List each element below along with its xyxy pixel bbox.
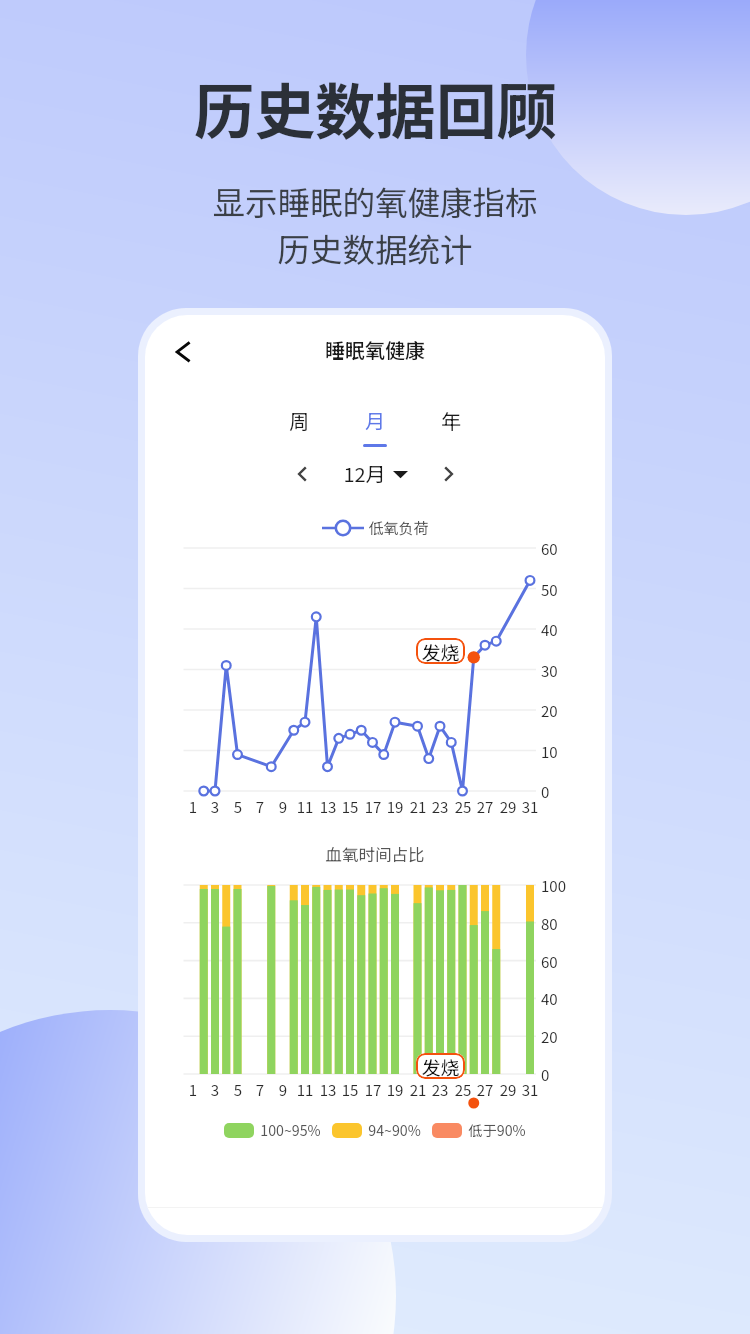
staticText: 29 (492, 1079, 524, 1101)
staticText: 年 (441, 406, 461, 435)
button[interactable]: Previous month (289, 460, 317, 488)
staticText: 12月 (343, 459, 386, 488)
staticText: 19 (379, 796, 411, 818)
staticText: 23 (424, 1079, 456, 1101)
staticText: 睡眠氧健康 (145, 335, 605, 364)
staticText: 3 (199, 796, 231, 818)
staticText: 23 (424, 796, 456, 818)
staticText: 17 (357, 796, 389, 818)
staticText: 历史数据统计 (277, 224, 473, 271)
staticText: 27 (469, 1079, 501, 1101)
staticText: 21 (402, 1079, 434, 1101)
staticText: 历史数据回顾 (194, 64, 557, 152)
staticText: 15 (334, 796, 366, 818)
staticText: 80 (541, 913, 581, 935)
staticText: 血氧时间占比 (145, 842, 605, 866)
staticText: 发烧 (421, 1053, 460, 1079)
staticText: 20 (541, 1026, 581, 1048)
staticText: 11 (289, 796, 321, 818)
staticText: 100~95% (260, 1120, 321, 1141)
staticText: 17 (357, 1079, 389, 1101)
staticText: 9 (267, 1079, 299, 1101)
button[interactable]: Next month (434, 460, 462, 488)
staticText: 13 (312, 1079, 344, 1101)
staticText: 29 (492, 796, 524, 818)
staticText: 周 (289, 406, 309, 435)
staticText: 低于90% (468, 1120, 526, 1141)
button[interactable]: 94~90% (332, 1120, 421, 1141)
button[interactable]: 年 (423, 406, 479, 447)
staticText: 15 (334, 1079, 366, 1101)
staticText: 94~90% (368, 1120, 421, 1141)
button[interactable]: 周 (271, 406, 327, 447)
staticText: 9 (267, 796, 299, 818)
button[interactable]: Back (170, 339, 198, 367)
staticText: 低氧负荷 (368, 517, 429, 539)
staticText: 100 (541, 875, 581, 897)
staticText: 60 (541, 538, 575, 560)
staticText: 13 (312, 796, 344, 818)
staticText: 40 (541, 988, 581, 1010)
staticText: 10 (541, 741, 575, 763)
staticText: 1 (177, 796, 209, 818)
staticText: 7 (244, 796, 276, 818)
button[interactable]: 12月 (343, 459, 408, 488)
staticText: 5 (222, 796, 254, 818)
staticText: 发烧 (421, 638, 460, 664)
staticText: 25 (447, 1079, 479, 1101)
staticText: 月 (365, 406, 385, 435)
staticText: 7 (244, 1079, 276, 1101)
staticText: 5 (222, 1079, 254, 1101)
staticText: 25 (447, 796, 479, 818)
staticText: 1 (177, 1079, 209, 1101)
button[interactable]: 低于90% (432, 1120, 526, 1141)
staticText: 27 (469, 796, 501, 818)
staticText: 31 (514, 796, 546, 818)
staticText: 11 (289, 1079, 321, 1101)
button[interactable]: 100~95% (224, 1120, 321, 1141)
staticText: 30 (541, 660, 575, 682)
staticText: 31 (514, 1079, 546, 1101)
staticText: 20 (541, 700, 575, 722)
staticText: 19 (379, 1079, 411, 1101)
staticText: 3 (199, 1079, 231, 1101)
staticText: 50 (541, 579, 575, 601)
staticText: 0 (541, 781, 575, 803)
staticText: 21 (402, 796, 434, 818)
staticText: 0 (541, 1064, 581, 1086)
staticText: 60 (541, 951, 581, 973)
staticText: 40 (541, 619, 575, 641)
staticText: 显示睡眠的氧健康指标 (212, 177, 538, 224)
button[interactable]: 月 (347, 406, 403, 447)
